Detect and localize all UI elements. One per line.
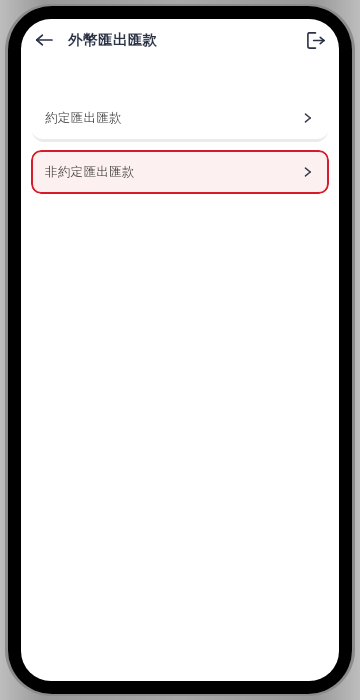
staticText: 非約定匯出匯款: [45, 164, 135, 180]
staticText: 外幣匯出匯款: [68, 31, 158, 49]
button[interactable]: 非約定匯出匯款: [31, 150, 329, 194]
button[interactable]: Logout: [299, 24, 331, 56]
button[interactable]: 約定匯出匯款: [31, 97, 329, 139]
staticText: 約定匯出匯款: [45, 110, 122, 126]
button[interactable]: Back: [28, 24, 60, 56]
